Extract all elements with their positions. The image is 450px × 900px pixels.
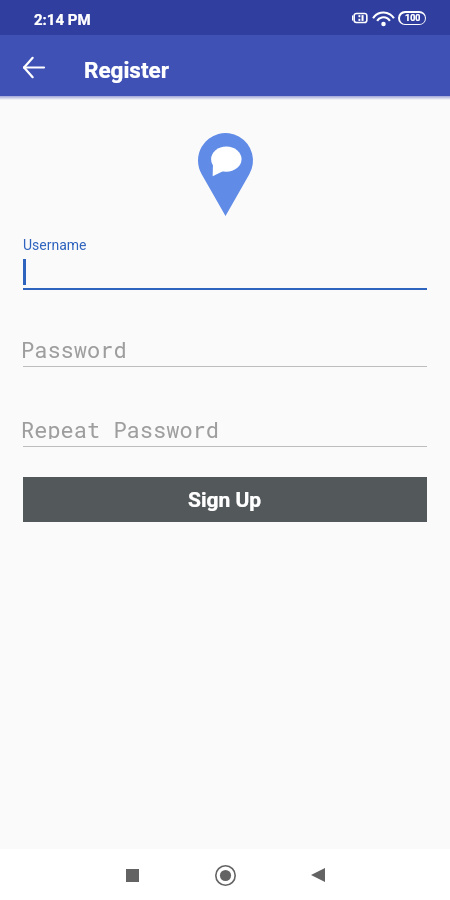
button[interactable]: Sign Up <box>23 477 427 522</box>
staticText: Repeat Password <box>21 415 220 439</box>
button[interactable]: Recent apps <box>110 853 154 897</box>
button[interactable]: Password <box>23 342 427 367</box>
staticText: 2:14 PM <box>34 11 91 29</box>
staticText: Sign Up <box>188 488 262 513</box>
staticText: Username <box>23 237 87 253</box>
button[interactable]: Back <box>296 853 340 897</box>
button[interactable]: Home <box>203 853 247 897</box>
staticText: Password <box>21 335 127 359</box>
button[interactable]: Repeat Password <box>23 422 427 447</box>
staticText: Register <box>84 57 169 83</box>
button[interactable]: Back <box>11 45 55 89</box>
button[interactable]: Username <box>23 237 427 290</box>
staticText: 100 <box>405 13 421 24</box>
